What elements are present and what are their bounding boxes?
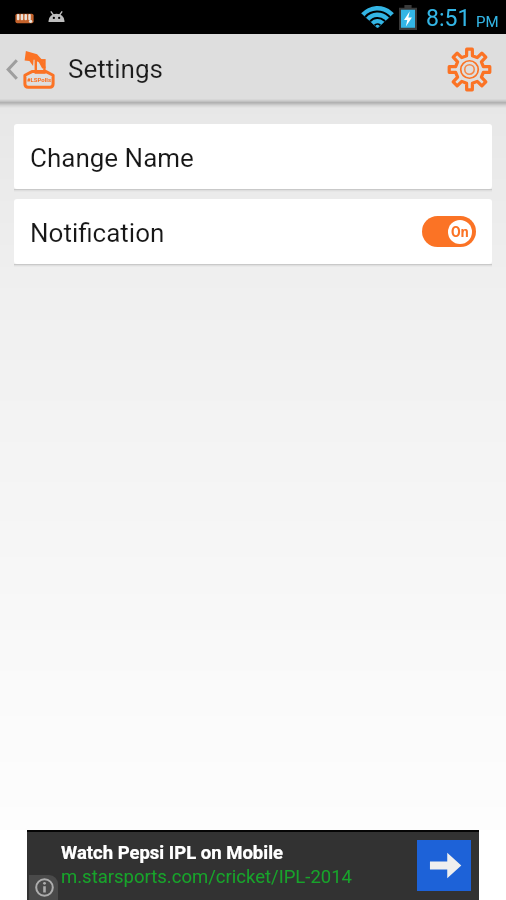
button[interactable]: On [422,216,476,247]
staticText: PM [476,13,499,31]
button[interactable]: Change Name [14,124,492,189]
button[interactable]: Settings [443,43,495,95]
button[interactable]: Back [0,41,24,97]
button[interactable]: Ad info [29,875,58,900]
staticText: #LSPolls [27,76,51,83]
staticText: Notification [30,218,165,248]
staticText: On [451,224,469,240]
staticText: Watch Pepsi IPL on Mobile [61,842,284,864]
staticText: m.starsports.com/cricket/IPL-2014 [61,866,353,888]
button[interactable]: Open ad [417,840,471,891]
button[interactable]: Notification [14,199,492,264]
staticText: Change Name [30,143,194,173]
staticText: 8:51 [426,5,471,32]
staticText: Settings [68,54,163,84]
button[interactable]: Watch Pepsi IPL on Mobile [27,830,479,900]
